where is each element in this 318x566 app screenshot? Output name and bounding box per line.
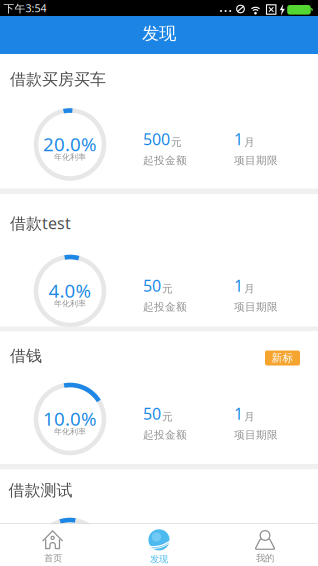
- staticText: 借款test: [10, 212, 71, 234]
- staticText: 项目期限: [234, 154, 278, 167]
- staticText: 元: [162, 410, 173, 423]
- button[interactable]: 借钱: [0, 331, 318, 464]
- button[interactable]: 我的: [212, 524, 318, 566]
- button[interactable]: 借款买房买车: [0, 54, 318, 188]
- staticText: 元: [162, 282, 173, 295]
- staticText: 年化利率: [54, 299, 86, 308]
- staticText: 年化利率: [54, 427, 86, 436]
- staticText: 20.0%: [43, 132, 97, 156]
- staticText: 借款测试: [8, 481, 72, 500]
- staticText: 10.0%: [43, 406, 97, 431]
- staticText: 月: [244, 410, 255, 423]
- staticText: 年化利率: [54, 562, 86, 566]
- staticText: 50: [143, 403, 161, 424]
- staticText: 1: [234, 128, 243, 150]
- staticText: 起投金额: [143, 300, 187, 313]
- staticText: 50: [143, 275, 161, 296]
- staticText: 发现: [142, 23, 176, 44]
- staticText: 月: [244, 136, 255, 149]
- staticText: 年化利率: [54, 152, 86, 162]
- staticText: 起投金额: [143, 428, 187, 441]
- button[interactable]: 发现: [106, 524, 212, 566]
- staticText: 月: [244, 282, 255, 295]
- button[interactable]: 借款test: [0, 194, 318, 326]
- staticText: 下午3:54: [3, 1, 46, 15]
- staticText: 我的: [256, 552, 274, 564]
- staticText: 新标: [271, 351, 293, 364]
- button[interactable]: 首页: [0, 524, 106, 566]
- staticText: 项目期限: [234, 300, 278, 313]
- staticText: 4.0%: [48, 278, 91, 303]
- staticText: 项目期限: [234, 428, 278, 441]
- staticText: 首页: [44, 552, 62, 564]
- staticText: 借钱: [10, 346, 42, 366]
- staticText: 元: [171, 136, 182, 149]
- button[interactable]: 借款测试: [0, 469, 318, 566]
- staticText: 发现: [150, 553, 168, 565]
- staticText: 起投金额: [143, 154, 187, 167]
- staticText: 1: [234, 275, 243, 296]
- staticText: 8.0%: [48, 541, 91, 566]
- staticText: 1: [234, 403, 243, 424]
- staticText: 借款买房买车: [10, 70, 106, 89]
- staticText: 500: [143, 128, 170, 150]
